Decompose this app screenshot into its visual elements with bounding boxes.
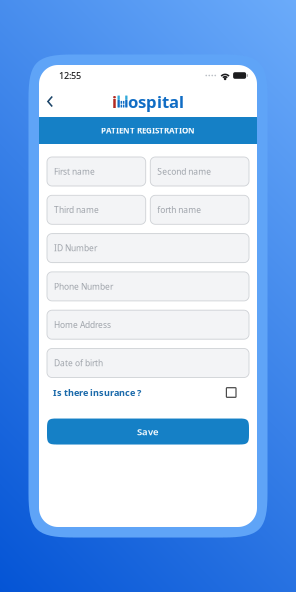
staticText: 12:55 bbox=[59, 69, 81, 81]
staticText: PATIENT REGISTRATION bbox=[101, 125, 195, 136]
staticText: Home Address bbox=[54, 319, 111, 330]
staticText: ID Number bbox=[54, 242, 97, 254]
staticText: ospital bbox=[128, 90, 184, 112]
staticText: Date of birth bbox=[54, 357, 103, 369]
staticText: Second name bbox=[157, 166, 211, 177]
staticText: Is there insurance ? bbox=[53, 386, 141, 398]
button[interactable]: Save bbox=[47, 418, 249, 444]
button[interactable]: Back bbox=[39, 89, 63, 114]
button[interactable]: Is there insurance ? bbox=[39, 382, 257, 402]
staticText: forth name bbox=[157, 204, 201, 215]
staticText: i bbox=[112, 90, 117, 112]
staticText: First name bbox=[54, 166, 95, 177]
staticText: Phone Number bbox=[54, 281, 113, 292]
staticText: Third name bbox=[54, 204, 99, 215]
staticText: Save bbox=[137, 425, 159, 438]
